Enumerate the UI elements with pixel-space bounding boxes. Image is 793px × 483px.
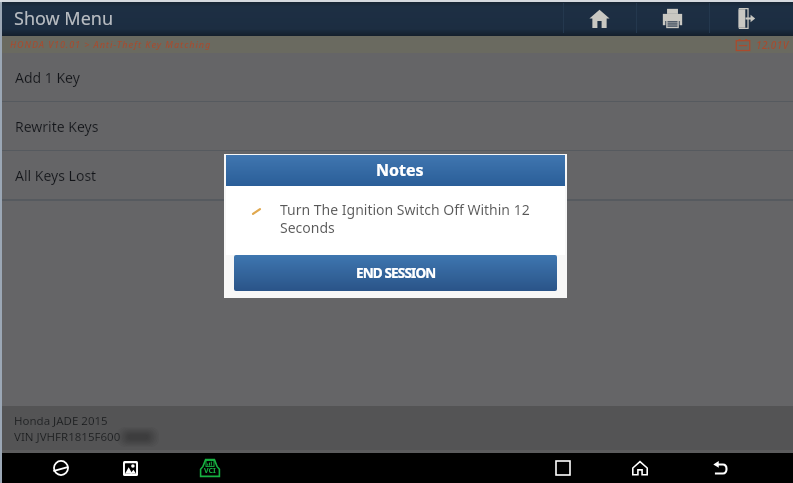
button[interactable]: END SESSION — [234, 255, 557, 291]
staticText: Show Menu — [14, 6, 114, 31]
staticText: All Keys Lost — [15, 166, 97, 185]
button[interactable]: Rewrite Keys — [0, 102, 793, 150]
button[interactable]: Gallery — [115, 453, 145, 483]
button[interactable]: Exit — [709, 0, 782, 36]
button[interactable]: Print — [636, 0, 709, 36]
button[interactable]: All Keys Lost — [0, 151, 793, 199]
staticText: 12.01V — [756, 38, 789, 52]
button[interactable]: Home — [563, 0, 636, 36]
staticText: Rewrite Keys — [15, 117, 99, 136]
button[interactable]: Recent apps — [548, 453, 578, 483]
staticText: Honda JADE 2015 — [14, 413, 108, 429]
button[interactable]: Add 1 Key — [0, 53, 793, 101]
button[interactable]: Back — [706, 453, 736, 483]
button[interactable]: Home — [625, 453, 655, 483]
button[interactable]: VCI device — [195, 453, 225, 483]
staticText: END SESSION — [356, 264, 436, 282]
staticText: Add 1 Key — [15, 68, 80, 87]
button[interactable]: Browser — [46, 453, 76, 483]
staticText: HONDA V10.01 > Anti-Theft Key Matching — [10, 38, 212, 50]
staticText: VIN JVHFR1815F600 — [14, 429, 121, 445]
staticText: VCI — [204, 466, 216, 476]
staticText: Notes — [376, 159, 424, 181]
staticText: Turn The Ignition Switch Off Within 12 S… — [280, 200, 536, 237]
